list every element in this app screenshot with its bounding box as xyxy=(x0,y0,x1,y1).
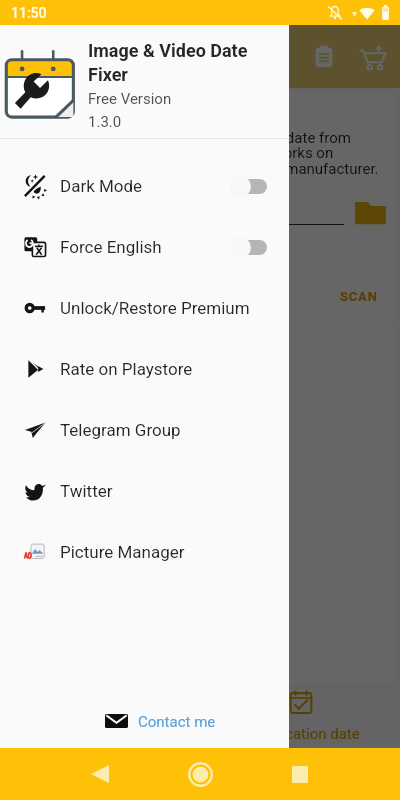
button[interactable]: Modification date xyxy=(241,684,361,748)
staticText: Twitter xyxy=(60,481,113,501)
staticText: Free Version xyxy=(88,90,172,108)
staticText: Picture Manager xyxy=(60,542,185,562)
staticText: 1.3.0 xyxy=(88,113,122,131)
button[interactable]: SCAN xyxy=(330,281,388,312)
button[interactable]: Force English xyxy=(0,216,289,277)
staticText: Unlock/Restore Premium xyxy=(60,298,250,318)
button[interactable]: Picture Manager xyxy=(0,521,289,582)
staticText: Force English xyxy=(60,237,162,257)
staticText: Image & Video Date Fixer xyxy=(88,40,275,85)
staticText: Telegram Group xyxy=(60,420,181,440)
button[interactable]: Home xyxy=(176,750,224,798)
staticText: 11:50 xyxy=(11,5,47,21)
button[interactable]: Creation date xyxy=(101,684,221,748)
button[interactable]: Telegram Group xyxy=(0,399,289,460)
staticText: Modification date xyxy=(243,725,360,743)
button[interactable]: Task list xyxy=(300,33,348,81)
button[interactable]: Store xyxy=(348,33,396,81)
button[interactable]: Recent apps xyxy=(276,750,324,798)
staticText: Scan your photo gallery and extract the … xyxy=(23,129,379,178)
button[interactable]: Twitter xyxy=(0,460,289,521)
staticText: Contact me xyxy=(138,713,216,731)
button[interactable]: Dark Mode xyxy=(0,155,289,216)
staticText: Rate on Playstore xyxy=(60,359,193,379)
staticText: Dark Mode xyxy=(60,176,143,196)
button[interactable]: Unlock/Restore Premium xyxy=(0,277,289,338)
staticText: Creation date xyxy=(116,725,206,743)
button[interactable]: Rate on Playstore xyxy=(0,338,289,399)
button[interactable]: Back xyxy=(76,750,124,798)
button[interactable]: Contact me xyxy=(0,690,289,752)
